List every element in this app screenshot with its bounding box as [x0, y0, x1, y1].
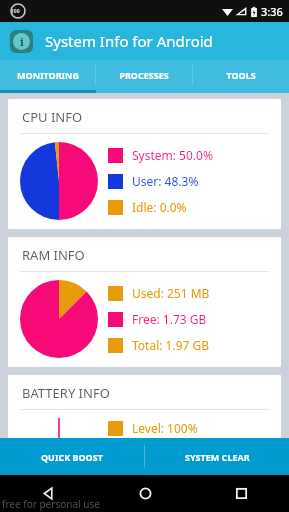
staticText: User: 48.3%	[132, 173, 199, 189]
button[interactable]: QUICK BOOST	[0, 438, 144, 475]
staticText: System Info for Android	[45, 31, 213, 51]
button[interactable]: CPU INFO	[8, 99, 281, 229]
staticText: 3:36	[261, 4, 283, 19]
staticText: SYSTEM CLEAR	[185, 451, 250, 463]
staticText: TOOLS	[226, 69, 256, 81]
button[interactable]: PROCESSES	[96, 60, 192, 90]
button[interactable]: RAM INFO	[8, 237, 281, 367]
button[interactable]: BATTERY INFO	[8, 375, 281, 438]
staticText: Used: 251 MB	[132, 285, 210, 301]
staticText: Free: 1.73 GB	[132, 311, 207, 327]
button[interactable]: MONITORING	[0, 60, 95, 90]
staticText: Level: 100%	[132, 420, 198, 436]
button[interactable]: Back	[0, 475, 97, 512]
staticText: Total: 1.97 GB	[132, 337, 210, 353]
staticText: CPU INFO	[22, 108, 83, 126]
button[interactable]: SYSTEM CLEAR	[145, 438, 289, 475]
staticText: Idle: 0.0%	[132, 199, 187, 215]
staticText: i	[20, 34, 24, 49]
staticText: PROCESSES	[119, 69, 169, 81]
staticText: QUICK BOOST	[41, 451, 103, 463]
staticText: MONITORING	[17, 69, 79, 81]
button[interactable]: Recent apps	[193, 475, 289, 512]
button[interactable]: TOOLS	[193, 60, 289, 90]
button[interactable]: Home	[97, 475, 193, 512]
staticText: RAM INFO	[22, 246, 85, 264]
staticText: System: 50.0%	[132, 147, 213, 163]
staticText: 100	[11, 8, 20, 15]
staticText: BATTERY INFO	[22, 384, 110, 402]
staticText: free for personal use	[2, 497, 100, 511]
